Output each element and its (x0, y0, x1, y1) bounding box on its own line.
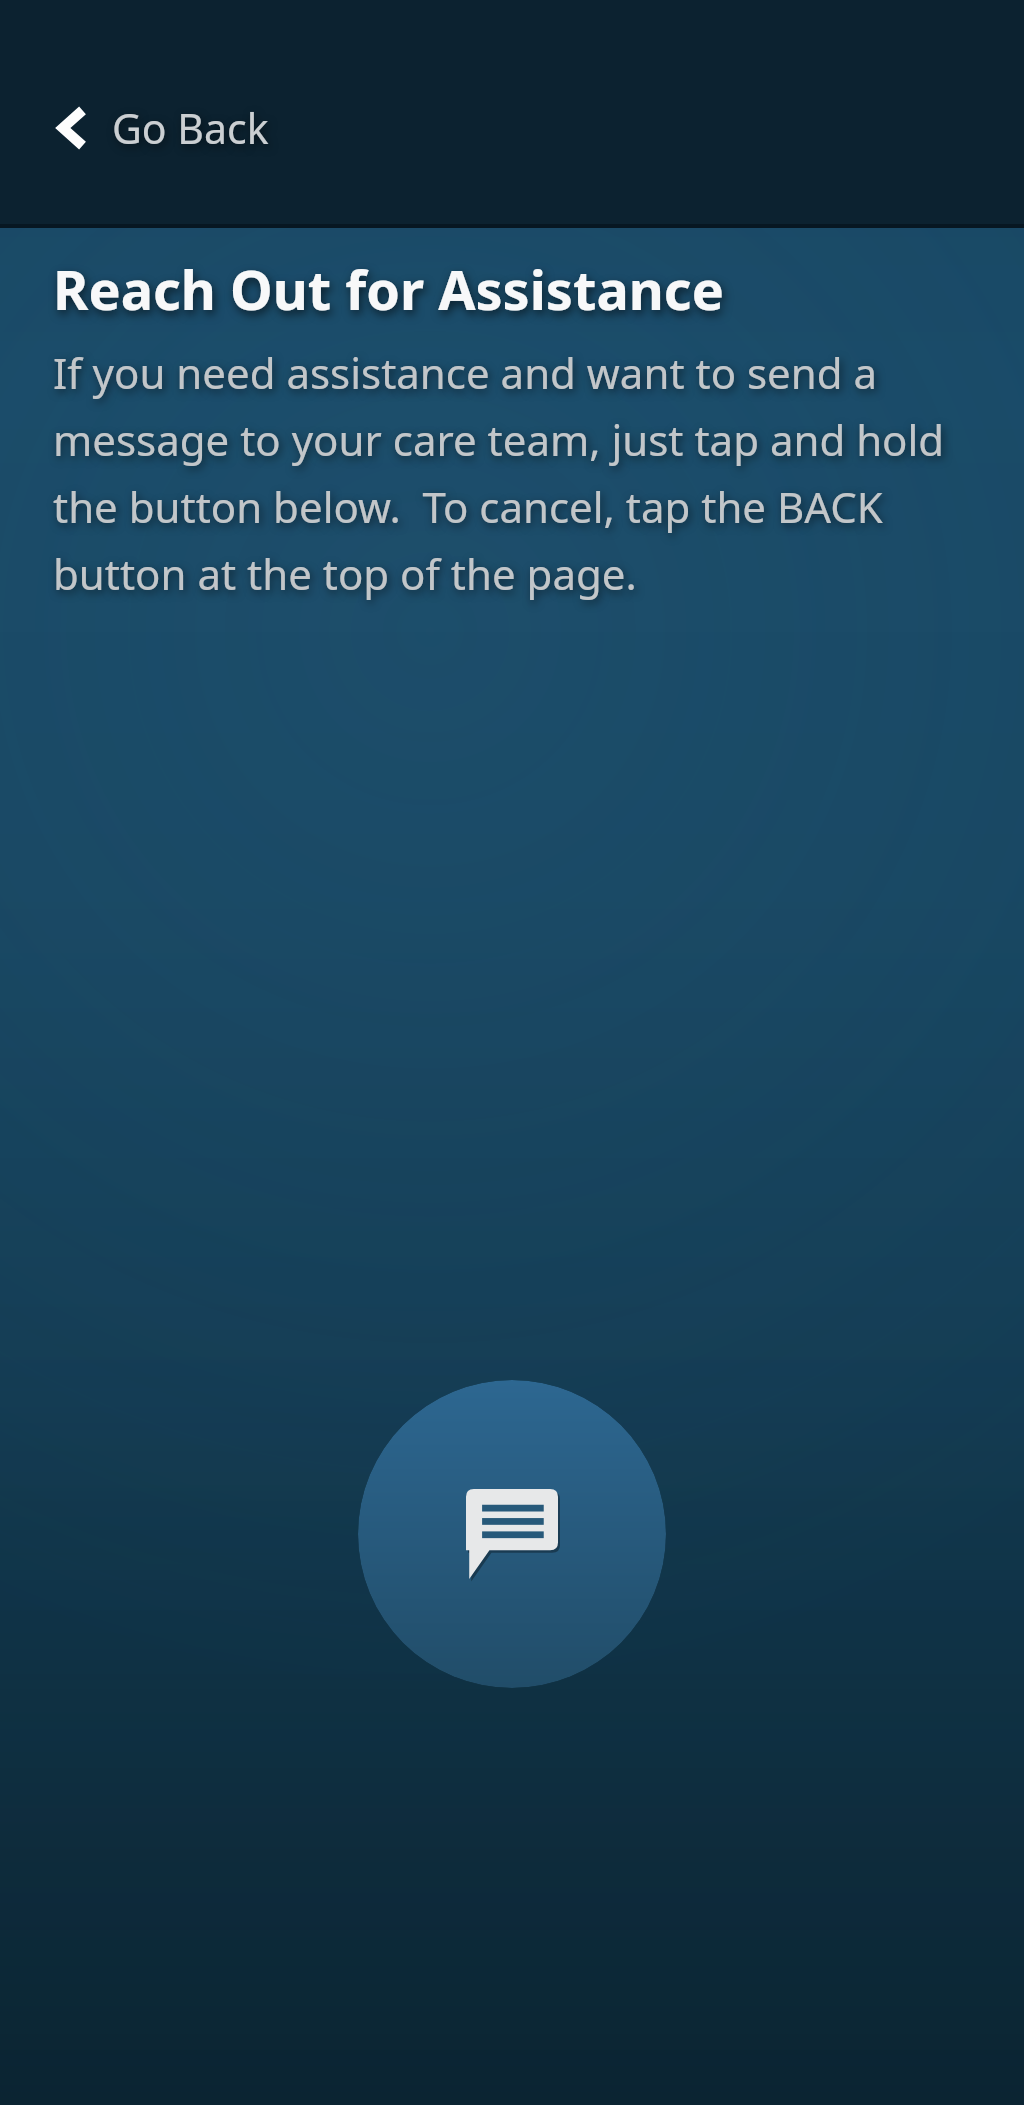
staticText: If you need assistance and want to send … (53, 344, 984, 602)
button[interactable]: Go Back (40, 90, 285, 166)
staticText: Go Back (112, 100, 269, 156)
button[interactable]: Send message to care team (358, 1380, 666, 1688)
staticText: Reach Out for Assistance (53, 252, 724, 326)
